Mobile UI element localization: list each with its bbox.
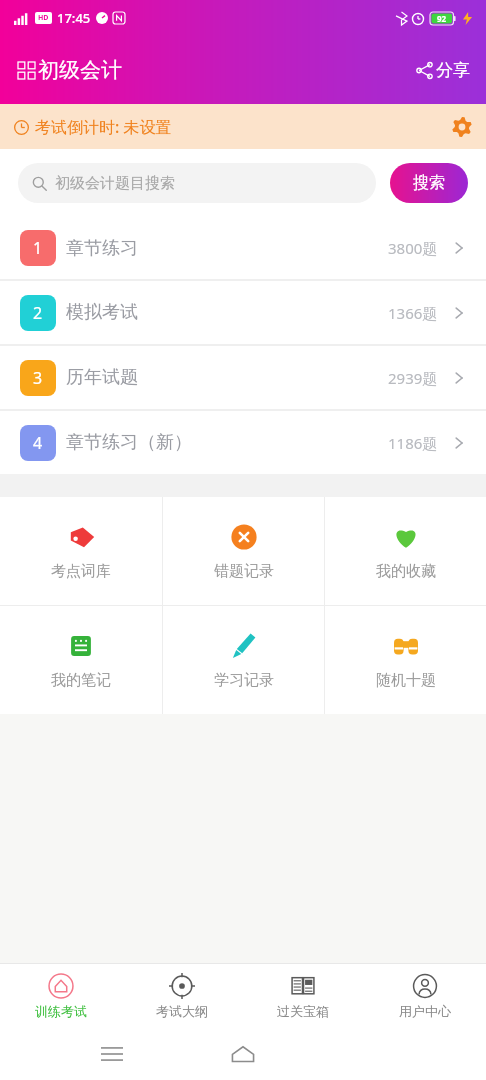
button[interactable]: 用户中心 [364, 964, 486, 1027]
staticText: 模拟考试 [66, 301, 138, 324]
staticText: 初级会计 [38, 57, 122, 83]
button[interactable]: 3 [0, 346, 486, 409]
button[interactable]: 2 [0, 281, 486, 344]
staticText: 章节练习 [66, 237, 138, 260]
staticText: 我的收藏 [376, 562, 436, 581]
staticText: 1186题 [388, 433, 438, 453]
button[interactable]: 我的收藏 [325, 497, 486, 605]
button[interactable]: 我的笔记 [0, 606, 162, 714]
button[interactable]: 初级会计 [18, 57, 122, 83]
staticText: 2939题 [388, 368, 438, 388]
staticText: 3 [33, 367, 43, 389]
staticText: 用户中心 [399, 1003, 451, 1019]
staticText: 随机十题 [376, 671, 436, 690]
staticText: 我的笔记 [51, 671, 111, 690]
button[interactable]: 考点词库 [0, 497, 162, 605]
staticText: 过关宝箱 [277, 1003, 329, 1019]
button[interactable]: 菜单 [92, 1034, 132, 1074]
staticText: 考点词库 [51, 562, 111, 581]
staticText: 历年试题 [66, 366, 138, 389]
staticText: 训练考试 [35, 1003, 87, 1019]
button[interactable]: 分享 [416, 60, 470, 81]
staticText: 3800题 [388, 238, 438, 258]
staticText: 考试倒计时: 未设置 [35, 116, 172, 138]
staticText: 考试大纲 [156, 1003, 208, 1019]
staticText: 学习记录 [214, 671, 274, 690]
button[interactable]: 1 [0, 217, 486, 279]
staticText: 17:45 [57, 9, 91, 27]
button[interactable]: 训练考试 [0, 964, 121, 1027]
staticText: 1366题 [388, 303, 438, 323]
staticText: 错题记录 [214, 562, 274, 581]
button[interactable]: 随机十题 [325, 606, 486, 714]
button[interactable]: 错题记录 [163, 497, 324, 605]
staticText: 2 [33, 302, 43, 324]
button[interactable]: 设置 [452, 117, 472, 137]
button[interactable]: 学习记录 [163, 606, 324, 714]
button[interactable]: 初级会计题目搜索 [18, 163, 376, 203]
staticText: 搜索 [413, 173, 445, 193]
staticText: 1 [33, 237, 43, 259]
staticText: 92 [437, 13, 447, 24]
button[interactable]: 4 [0, 411, 486, 474]
button[interactable]: 主页 [223, 1034, 263, 1074]
button[interactable]: 考试倒计时: 未设置 [0, 104, 486, 149]
staticText: 章节练习（新） [66, 431, 192, 454]
button[interactable]: 考试大纲 [121, 964, 242, 1027]
staticText: HD [38, 13, 49, 23]
button[interactable]: 过关宝箱 [242, 964, 364, 1027]
staticText: 4 [33, 432, 43, 454]
staticText: 初级会计题目搜索 [55, 174, 175, 193]
button[interactable]: 搜索 [390, 163, 468, 203]
staticText: 分享 [436, 60, 470, 81]
